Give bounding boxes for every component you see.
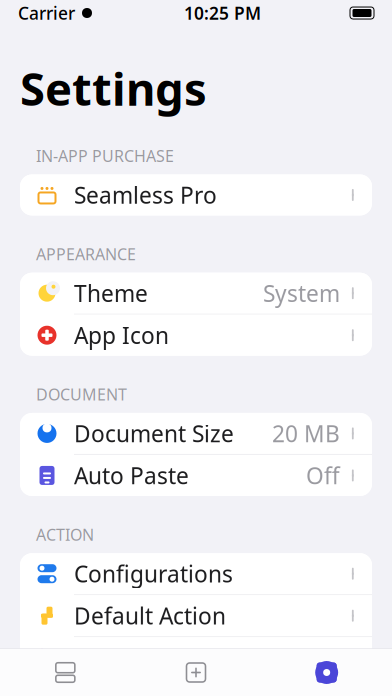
staticText: 20 MB — [272, 418, 340, 448]
button[interactable]: Configurations — [20, 553, 372, 594]
staticText: System — [263, 278, 340, 308]
button[interactable]: Swipe Actions — [20, 637, 372, 678]
button[interactable]: Library — [0, 659, 131, 685]
staticText: Carrier — [18, 1, 75, 24]
button[interactable]: Document Size — [20, 413, 372, 454]
staticText: Settings — [20, 58, 207, 118]
staticText: Configurations — [74, 559, 233, 589]
button[interactable]: Auto Paste — [20, 455, 372, 496]
staticText: APPEARANCE — [36, 243, 136, 265]
button[interactable]: App Icon — [20, 315, 372, 356]
button[interactable]: Default Action — [20, 595, 372, 636]
staticText: IN-APP PURCHASE — [36, 145, 174, 166]
button[interactable]: Add — [131, 659, 261, 685]
button[interactable]: Settings — [261, 659, 392, 685]
staticText: Swipe Actions — [74, 643, 221, 673]
staticText: Theme — [74, 278, 148, 308]
button[interactable]: Theme — [20, 273, 372, 314]
staticText: Auto Paste — [74, 460, 189, 490]
staticText: Default Action — [74, 601, 226, 631]
staticText: Off — [306, 460, 340, 490]
staticText: Seamless Pro — [74, 180, 217, 210]
staticText: ACTION — [36, 524, 94, 545]
staticText: App Icon — [74, 320, 169, 350]
staticText: 10:25 PM — [184, 1, 261, 24]
staticText: DOCUMENT — [36, 384, 127, 405]
staticText: Document Size — [74, 418, 234, 448]
button[interactable]: Seamless Pro — [20, 174, 372, 215]
